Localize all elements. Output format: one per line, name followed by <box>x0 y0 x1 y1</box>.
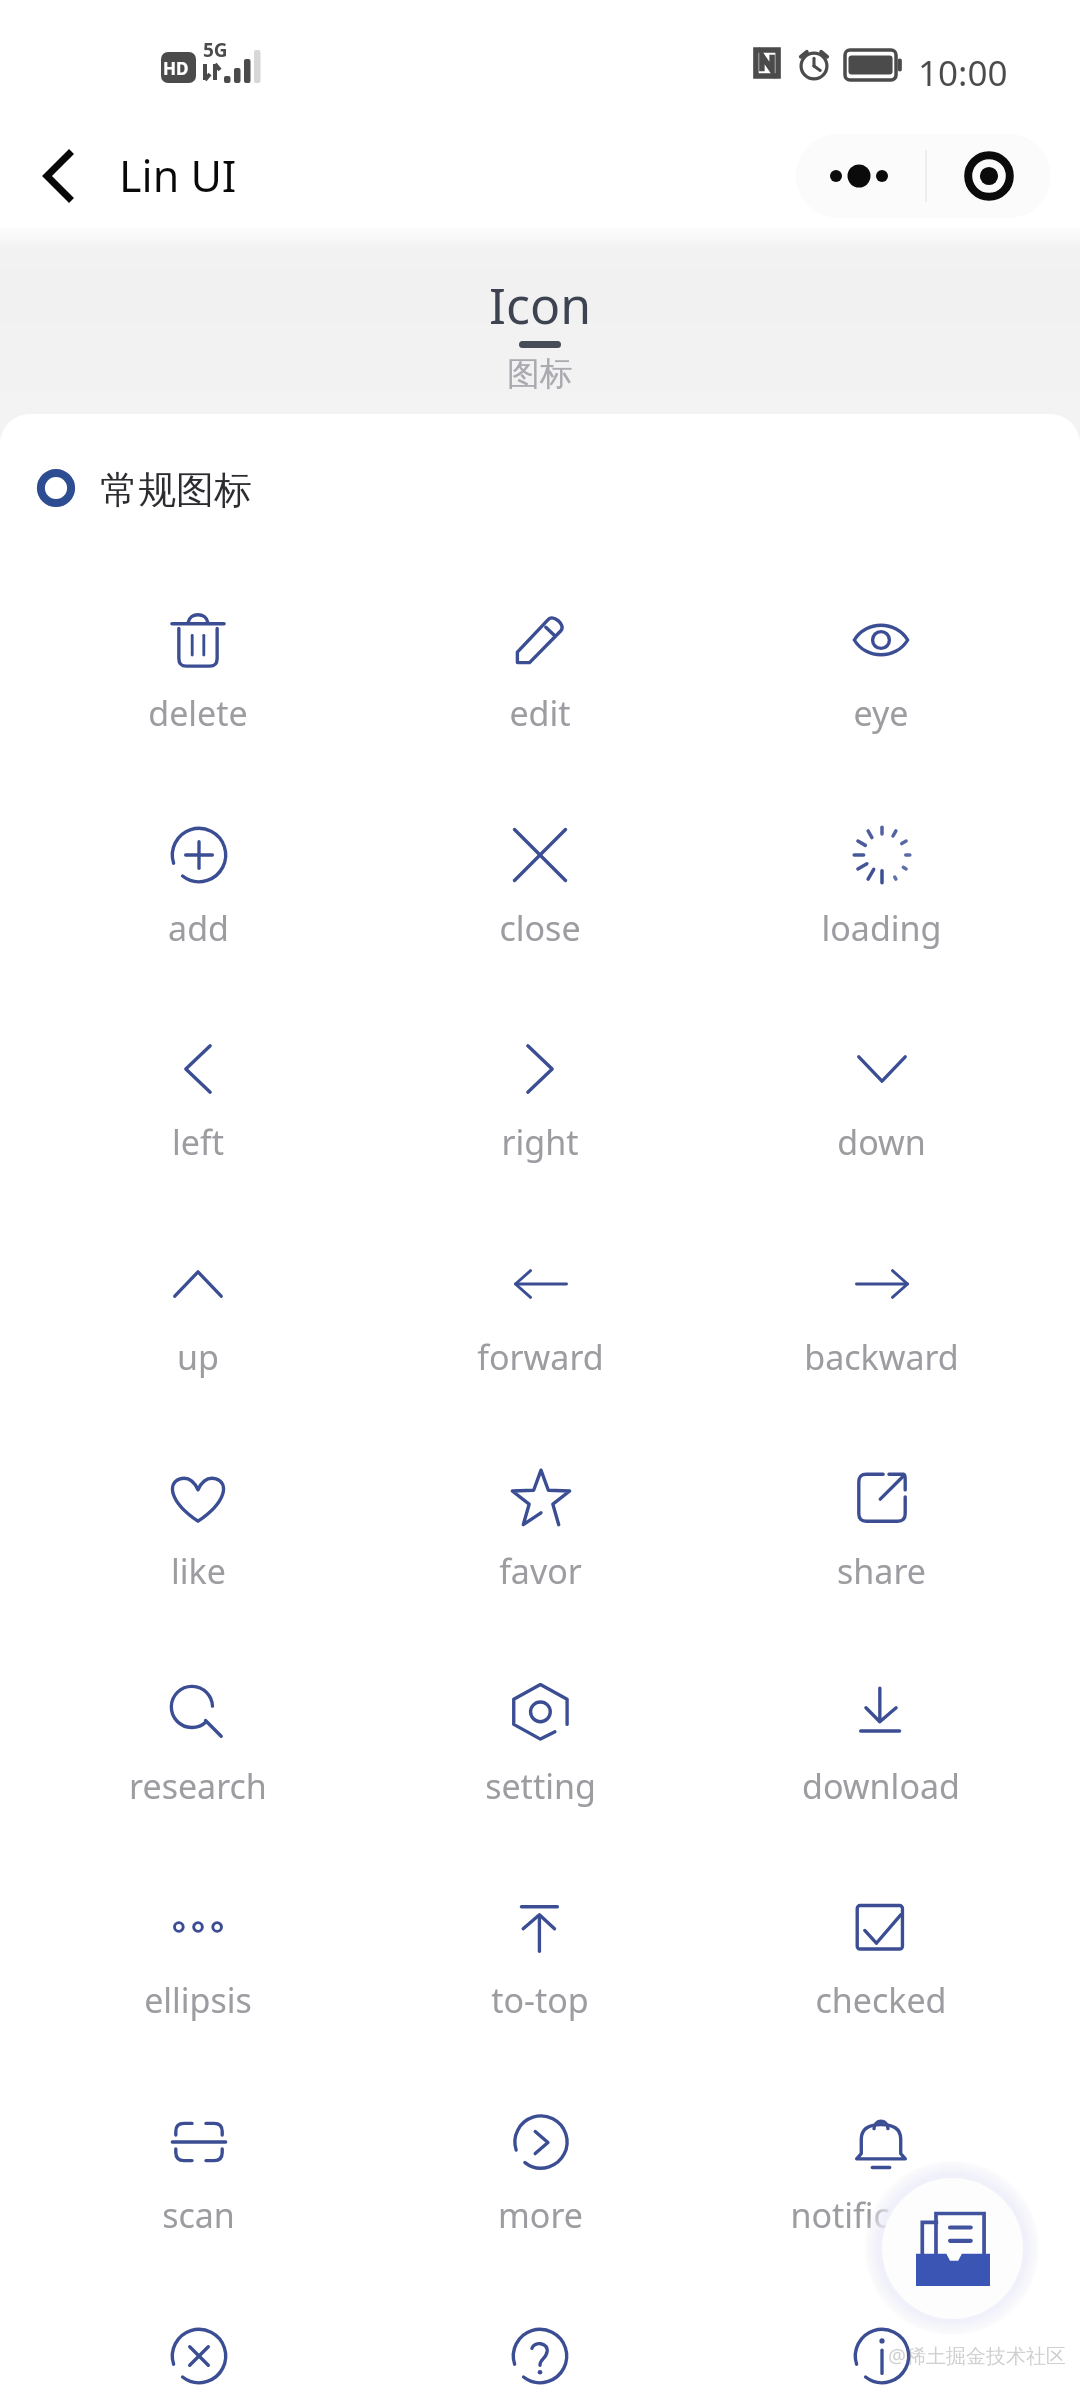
button[interactable]: like <box>27 1408 369 1608</box>
button[interactable]: notification <box>710 2052 1052 2252</box>
button[interactable]: eye <box>710 550 1052 750</box>
button[interactable]: to-top <box>369 1837 711 2037</box>
staticText: 10:00 <box>918 49 1008 97</box>
button[interactable]: Close mini program <box>927 134 1051 218</box>
button[interactable]: 常规图标 <box>38 466 252 510</box>
staticText: 图标 <box>507 353 573 395</box>
button[interactable]: edit <box>369 550 711 750</box>
staticText: favor <box>499 1548 582 1594</box>
staticText: setting <box>485 1763 596 1809</box>
staticText: forward <box>477 1334 604 1380</box>
staticText: like <box>171 1548 226 1594</box>
staticText: more <box>498 2192 583 2238</box>
button[interactable]: More options <box>796 134 925 218</box>
staticText: notification <box>790 2192 972 2238</box>
button[interactable]: help <box>369 2266 711 2400</box>
button[interactable]: favor <box>369 1408 711 1608</box>
staticText: delete <box>148 690 248 736</box>
button[interactable]: more <box>369 2052 711 2252</box>
button[interactable]: close-circle <box>27 2266 369 2400</box>
staticText: to-top <box>491 1977 589 2023</box>
button[interactable]: forward <box>369 1194 711 1394</box>
button[interactable]: Inbox <box>882 2178 1023 2319</box>
staticText: up <box>177 1334 219 1380</box>
staticText: down <box>837 1119 926 1165</box>
staticText: ellipsis <box>144 1977 252 2023</box>
button[interactable]: download <box>710 1623 1052 1823</box>
staticText: left <box>172 1119 224 1165</box>
button[interactable]: scan <box>27 2052 369 2252</box>
button[interactable]: loading <box>710 765 1052 965</box>
staticText: 常规图标 <box>100 466 252 510</box>
staticText: research <box>129 1763 267 1809</box>
staticText: Icon <box>489 271 592 339</box>
button[interactable]: Back <box>18 136 98 216</box>
staticText: share <box>837 1548 926 1594</box>
staticText: right <box>501 1119 579 1165</box>
button[interactable]: backward <box>710 1194 1052 1394</box>
button[interactable]: info <box>710 2266 1052 2400</box>
staticText: backward <box>804 1334 959 1380</box>
staticText: eye <box>853 690 909 736</box>
staticText: 5G <box>203 37 228 63</box>
staticText: checked <box>815 1977 947 2023</box>
staticText: HD <box>163 57 189 80</box>
button[interactable]: research <box>27 1623 369 1823</box>
button[interactable]: setting <box>369 1623 711 1823</box>
button[interactable]: share <box>710 1408 1052 1608</box>
staticText: close <box>499 905 581 951</box>
button[interactable]: up <box>27 1194 369 1394</box>
button[interactable]: right <box>369 979 711 1179</box>
button[interactable]: close <box>369 765 711 965</box>
staticText: edit <box>509 690 571 736</box>
button[interactable]: down <box>710 979 1052 1179</box>
staticText: download <box>802 1763 960 1809</box>
button[interactable]: delete <box>27 550 369 750</box>
staticText: Lin UI <box>119 146 237 205</box>
button[interactable]: left <box>27 979 369 1179</box>
staticText: add <box>168 905 229 951</box>
staticText: loading <box>821 905 942 951</box>
button[interactable]: ellipsis <box>27 1837 369 2037</box>
button[interactable]: add <box>27 765 369 965</box>
staticText: @稀土掘金技术社区 <box>888 2342 1066 2369</box>
button[interactable]: checked <box>710 1837 1052 2037</box>
staticText: scan <box>162 2192 235 2238</box>
